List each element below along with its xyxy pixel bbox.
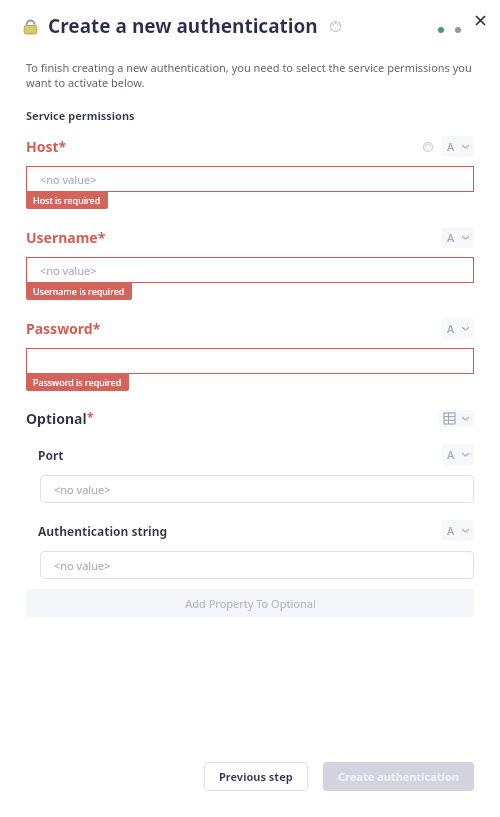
button[interactable] bbox=[26, 348, 474, 374]
staticText: Password* bbox=[26, 319, 101, 338]
staticText: A bbox=[447, 447, 455, 462]
button[interactable]: Change type: text bbox=[442, 318, 474, 339]
staticText: Port bbox=[38, 447, 64, 463]
button[interactable]: Help bbox=[326, 17, 344, 35]
staticText: Add Property To Optional bbox=[185, 596, 316, 611]
staticText: A bbox=[447, 139, 455, 154]
staticText: Previous step bbox=[219, 769, 293, 784]
button[interactable]: Add Property To Optional bbox=[26, 589, 474, 617]
button[interactable]: Change type: table bbox=[439, 410, 474, 427]
staticText: * bbox=[87, 409, 94, 425]
staticText: <no value> bbox=[54, 482, 111, 497]
staticText: Optional bbox=[26, 409, 87, 428]
staticText: <no value> bbox=[54, 558, 111, 573]
staticText: Password is required bbox=[33, 376, 122, 388]
staticText: Create authentication bbox=[338, 769, 459, 784]
button[interactable]: <no value> bbox=[40, 475, 474, 503]
staticText: Create a new authentication bbox=[48, 13, 318, 39]
button[interactable]: Change type: text bbox=[442, 520, 474, 541]
button[interactable]: Create authentication bbox=[323, 762, 474, 791]
staticText: A bbox=[447, 230, 455, 245]
button[interactable]: <no value> bbox=[40, 551, 474, 579]
staticText: A bbox=[447, 321, 455, 336]
button[interactable]: <no value> bbox=[26, 257, 474, 283]
staticText: <no value> bbox=[40, 172, 97, 187]
staticText: want to activate below. bbox=[26, 75, 145, 90]
staticText: Authentication string bbox=[38, 523, 168, 539]
button[interactable]: Change type: text bbox=[442, 227, 474, 248]
button[interactable]: Close bbox=[470, 10, 490, 30]
staticText: <no value> bbox=[40, 263, 97, 278]
button[interactable]: Previous step bbox=[204, 762, 308, 791]
button[interactable]: <no value> bbox=[26, 166, 474, 192]
staticText: Service permissions bbox=[26, 108, 135, 123]
button[interactable]: Change type: text bbox=[442, 444, 474, 465]
button[interactable]: Field help bbox=[420, 139, 436, 155]
staticText: Username is required bbox=[33, 285, 125, 297]
staticText: Username* bbox=[26, 228, 106, 247]
staticText: Host* bbox=[26, 137, 67, 156]
staticText: To finish creating a new authentication,… bbox=[26, 60, 472, 75]
staticText: A bbox=[447, 523, 455, 538]
button[interactable]: Change type: text bbox=[442, 136, 474, 157]
staticText: Host is required bbox=[33, 194, 101, 206]
